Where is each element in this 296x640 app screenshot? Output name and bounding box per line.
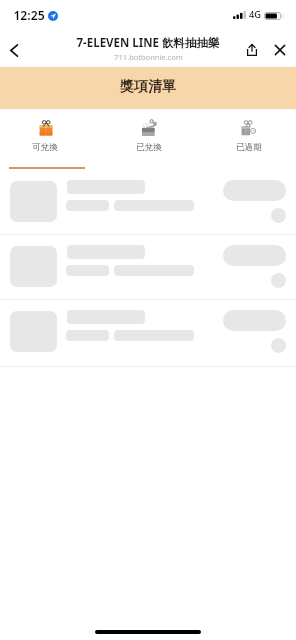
button[interactable]: 已過期: [197, 109, 296, 170]
button[interactable]: Share: [239, 31, 265, 57]
staticText: 12:25: [13, 7, 45, 24]
staticText: 獎項清單: [120, 78, 176, 96]
button[interactable]: 可兌換: [0, 109, 96, 170]
staticText: 已過期: [236, 142, 262, 153]
button[interactable]: 已兌換: [97, 109, 200, 170]
staticText: 4G: [249, 8, 261, 21]
staticText: 711.botbonnie.com: [114, 52, 183, 62]
staticText: 7-ELEVEN LINE 飲料抽抽樂: [76, 35, 220, 51]
staticText: 已兌換: [136, 142, 162, 153]
button[interactable]: Back: [2, 31, 28, 57]
staticText: 可兌換: [32, 142, 58, 153]
button[interactable]: Close: [267, 31, 293, 57]
